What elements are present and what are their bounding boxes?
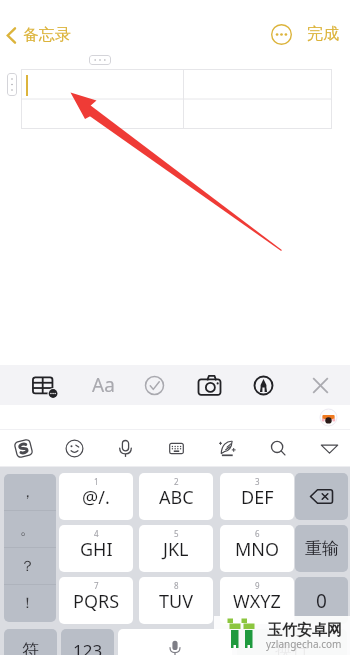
staticText: MNO bbox=[235, 537, 280, 562]
button[interactable]: 4 bbox=[59, 525, 133, 572]
button[interactable]: ！ bbox=[4, 585, 56, 622]
button[interactable]: 重输 bbox=[295, 525, 348, 572]
staticText: 2 bbox=[174, 476, 179, 487]
button[interactable]: 0 bbox=[295, 577, 348, 624]
button[interactable]: 5 bbox=[139, 525, 213, 572]
staticText: GHI bbox=[80, 537, 113, 562]
staticText: 符 bbox=[22, 640, 39, 655]
staticText: ？ bbox=[20, 557, 35, 576]
button[interactable]: Close keyboard bbox=[300, 365, 340, 405]
staticText: 8 bbox=[174, 580, 179, 591]
staticText: 7 bbox=[94, 580, 99, 591]
staticText: 0 bbox=[316, 588, 327, 614]
button[interactable]: 7 bbox=[59, 577, 133, 624]
button[interactable]: 9 bbox=[220, 577, 294, 624]
button[interactable]: Markup bbox=[243, 365, 283, 405]
staticText: 4 bbox=[94, 528, 99, 539]
button[interactable]: 3 bbox=[220, 473, 294, 520]
staticText: PQRS bbox=[73, 589, 120, 614]
button[interactable]: 符 bbox=[4, 629, 57, 655]
staticText: 完成 bbox=[307, 24, 339, 44]
button[interactable]: Insert table bbox=[24, 365, 64, 405]
staticText: 玉竹安卓网 bbox=[267, 621, 342, 640]
button[interactable]: Hide keyboard bbox=[309, 430, 349, 467]
button[interactable]: Row handle bbox=[7, 73, 17, 96]
button[interactable]: Column handle bbox=[89, 55, 111, 65]
staticText: 重输 bbox=[305, 538, 339, 559]
staticText: 9 bbox=[255, 580, 260, 591]
button[interactable]: ， bbox=[4, 474, 56, 511]
staticText: ！ bbox=[20, 594, 35, 613]
button[interactable]: Sogou input bbox=[3, 430, 43, 467]
staticText: ABC bbox=[159, 485, 194, 510]
button[interactable]: Search bbox=[258, 430, 298, 467]
staticText: 123 bbox=[73, 639, 103, 655]
button[interactable]: 1 bbox=[59, 473, 133, 520]
button[interactable]: Sogou mascot bbox=[320, 409, 337, 426]
staticText: 3 bbox=[255, 476, 260, 487]
button[interactable]: Camera bbox=[189, 365, 229, 405]
button[interactable]: Voice input bbox=[118, 629, 232, 655]
staticText: JKL bbox=[163, 537, 189, 562]
button[interactable]: Voice input bbox=[105, 430, 145, 467]
staticText: Aa bbox=[92, 372, 115, 398]
button[interactable]: Handwriting bbox=[207, 430, 247, 467]
button[interactable]: 换行 bbox=[237, 629, 347, 655]
staticText: ， bbox=[20, 483, 35, 502]
button[interactable]: 123 bbox=[61, 629, 114, 655]
button[interactable]: Backspace bbox=[295, 473, 348, 520]
button[interactable]: Emoji bbox=[54, 430, 94, 467]
button[interactable]: Keyboard layout bbox=[156, 430, 196, 467]
staticText: 备忘录 bbox=[23, 25, 71, 45]
staticText: @/. bbox=[82, 485, 110, 510]
staticText: TUV bbox=[159, 589, 193, 614]
staticText: 1 bbox=[94, 476, 99, 487]
staticText: WXYZ bbox=[233, 589, 281, 614]
staticText: yzlangecha.com bbox=[266, 637, 342, 651]
button[interactable]: 6 bbox=[220, 525, 294, 572]
button[interactable]: ？ bbox=[4, 548, 56, 585]
button[interactable]: 。 bbox=[4, 511, 56, 548]
button[interactable]: 备忘录 bbox=[0, 19, 81, 51]
button[interactable]: 2 bbox=[139, 473, 213, 520]
button[interactable]: Aa bbox=[81, 365, 125, 405]
button[interactable]: 8 bbox=[139, 577, 213, 624]
staticText: DEF bbox=[241, 485, 274, 510]
staticText: 6 bbox=[255, 528, 260, 539]
button[interactable]: 完成 bbox=[298, 17, 350, 51]
staticText: 5 bbox=[174, 528, 179, 539]
button[interactable]: More options bbox=[264, 17, 298, 51]
staticText: 换行 bbox=[275, 640, 309, 655]
button[interactable]: Checklist bbox=[134, 365, 174, 405]
staticText: 。 bbox=[20, 520, 35, 539]
